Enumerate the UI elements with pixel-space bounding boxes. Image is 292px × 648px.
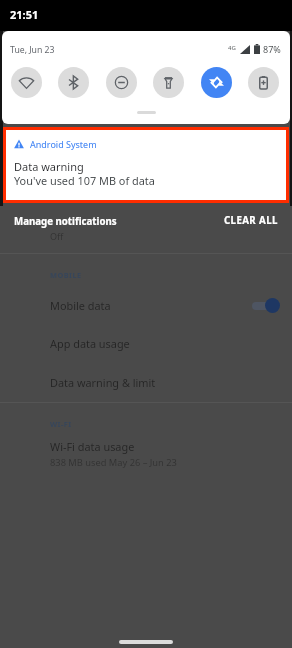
button[interactable]: App data usage [0,326,292,360]
button[interactable]: Wi-Fi [11,67,42,98]
button[interactable]: Bluetooth [58,67,89,98]
staticText: 4G [228,44,236,52]
staticText: You've used 107 MB of data [14,173,155,188]
staticText: Android System [30,138,97,150]
button[interactable]: Manage notifications [8,212,123,231]
button[interactable]: Wi-Fi data usage [0,436,292,472]
staticText: WI-FI [50,419,72,429]
staticText: Off [50,230,64,242]
button[interactable]: Mobile data [0,288,292,322]
staticText: 838 MB used May 26 – Jun 23 [50,456,177,469]
staticText: Manage notifications [14,215,117,228]
staticText: Wi-Fi data usage [50,439,135,454]
staticText: Data warning [14,159,84,174]
staticText: MOBILE [50,270,82,280]
button[interactable]: Android System [6,130,286,200]
staticText: Mobile data [50,298,111,313]
button[interactable]: Auto-rotate [201,67,232,98]
button[interactable]: Data warning & limit [0,365,292,399]
staticText: 87% [263,43,281,55]
staticText: App data usage [50,336,130,351]
staticText: Data warning & limit [50,375,156,390]
staticText: Tue, Jun 23 [10,44,55,56]
staticText: CLEAR ALL [224,214,278,227]
button[interactable]: Flashlight [153,67,184,98]
staticText: 21:51 [10,7,39,22]
button[interactable]: Do Not Disturb [106,67,137,98]
button[interactable]: Battery Saver [248,67,279,98]
button[interactable]: CLEAR ALL [219,211,283,230]
